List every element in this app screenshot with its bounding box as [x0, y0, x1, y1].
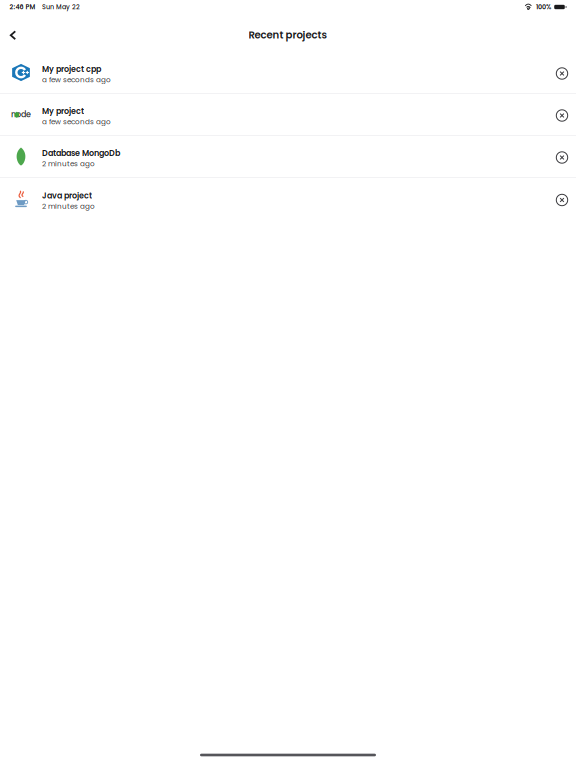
button[interactable]: My project cpp	[0, 52, 576, 93]
staticText: Sun May 22	[42, 2, 80, 11]
staticText: node	[11, 109, 31, 120]
button[interactable]: node	[0, 94, 576, 135]
staticText: 100%	[536, 2, 551, 11]
button[interactable]: Remove My project	[549, 100, 575, 128]
staticText: Java project	[42, 190, 92, 201]
staticText: My project cpp	[42, 64, 101, 75]
staticText: 2:46 PM	[9, 2, 35, 11]
staticText: 2 minutes ago	[42, 201, 95, 211]
button[interactable]: Remove Database MongoDb	[549, 142, 575, 170]
button[interactable]: Database MongoDb	[0, 136, 576, 177]
button[interactable]: Remove Java project	[549, 185, 575, 213]
button[interactable]: Remove My project cpp	[549, 58, 575, 86]
button[interactable]: Java project	[0, 178, 576, 220]
staticText: Recent projects	[248, 28, 327, 42]
button[interactable]: Back	[2, 22, 24, 44]
staticText: Database MongoDb	[42, 148, 120, 159]
staticText: My project	[42, 106, 84, 117]
staticText: a few seconds ago	[42, 117, 111, 127]
staticText: a few seconds ago	[42, 75, 111, 85]
staticText: 2 minutes ago	[42, 159, 95, 169]
